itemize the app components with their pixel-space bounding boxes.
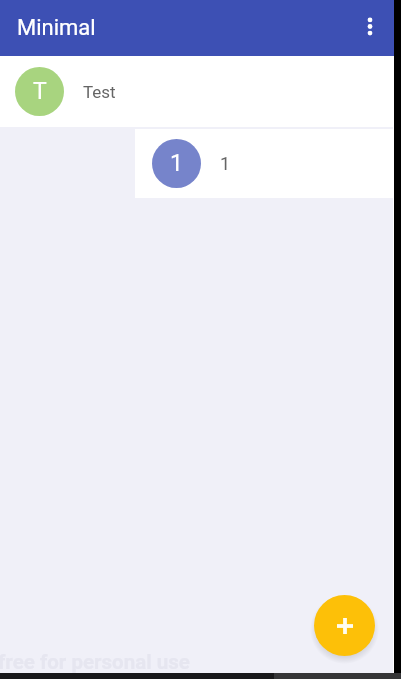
staticText: 1 [220, 153, 231, 174]
button[interactable]: Add [314, 595, 375, 656]
staticText: Minimal [17, 15, 96, 41]
staticText: T [33, 78, 47, 105]
button[interactable]: More options [345, 0, 393, 56]
staticText: free for personal use [0, 650, 190, 674]
staticText: Test [83, 82, 116, 102]
staticText: 1 [170, 150, 183, 177]
button[interactable]: T [0, 56, 393, 127]
button[interactable]: 1 [135, 129, 393, 198]
